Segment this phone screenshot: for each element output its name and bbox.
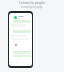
button[interactable]: More options bbox=[10, 62, 17, 63]
button[interactable]: Contact avatar bbox=[14, 16, 17, 19]
staticText: Connect to people bbox=[19, 1, 45, 5]
staticText: messaging apps bbox=[21, 5, 43, 9]
